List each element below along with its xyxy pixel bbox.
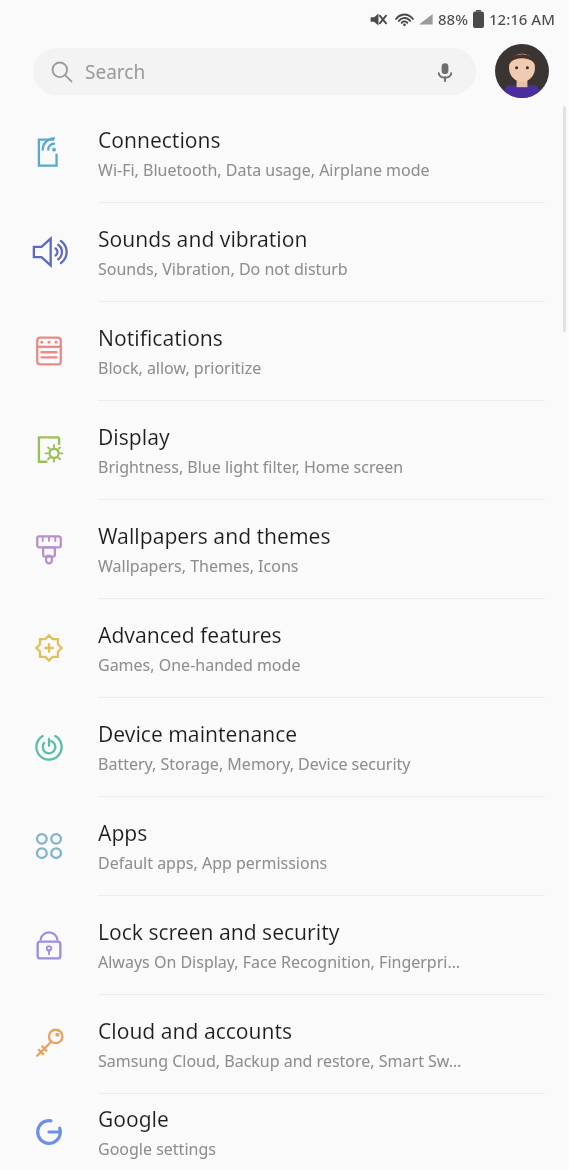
staticText: Sounds and vibration [98, 225, 308, 254]
staticText: Samsung Cloud, Backup and restore, Smart… [98, 1050, 462, 1072]
button[interactable]: Lock screen and security [0, 896, 569, 994]
staticText: Lock screen and security [98, 918, 340, 947]
button[interactable]: Cloud and accounts [0, 995, 569, 1093]
staticText: Google [98, 1105, 169, 1134]
button[interactable]: Sounds and vibration [0, 203, 569, 301]
staticText: Device maintenance [98, 720, 298, 749]
button[interactable]: Search [33, 48, 476, 95]
staticText: Google settings [98, 1138, 216, 1160]
staticText: Search [85, 59, 146, 85]
staticText: 88% [438, 9, 468, 29]
button[interactable]: Display [0, 401, 569, 499]
staticText: Display [98, 423, 170, 452]
staticText: Sounds, Vibration, Do not disturb [98, 258, 348, 280]
staticText: Games, One-handed mode [98, 654, 301, 676]
staticText: Always On Display, Face Recognition, Fin… [98, 951, 461, 973]
staticText: 12:16 AM [489, 9, 555, 29]
button[interactable]: Profile [495, 44, 549, 98]
button[interactable]: Connections [0, 104, 569, 202]
button[interactable]: Google [0, 1094, 569, 1170]
staticText: Apps [98, 819, 148, 848]
button[interactable]: Apps [0, 797, 569, 895]
staticText: Connections [98, 126, 221, 155]
staticText: Default apps, App permissions [98, 852, 328, 874]
staticText: Advanced features [98, 621, 282, 650]
staticText: Wi-Fi, Bluetooth, Data usage, Airplane m… [98, 159, 430, 181]
staticText: Battery, Storage, Memory, Device securit… [98, 753, 411, 775]
staticText: Brightness, Blue light filter, Home scre… [98, 456, 404, 478]
button[interactable]: Advanced features [0, 599, 569, 697]
button[interactable]: Wallpapers and themes [0, 500, 569, 598]
staticText: Wallpapers, Themes, Icons [98, 555, 299, 577]
button[interactable]: Voice search [432, 59, 458, 85]
staticText: Notifications [98, 324, 223, 353]
button[interactable]: Notifications [0, 302, 569, 400]
button[interactable]: Device maintenance [0, 698, 569, 796]
staticText: Cloud and accounts [98, 1017, 293, 1046]
staticText: Block, allow, prioritize [98, 357, 262, 379]
staticText: Wallpapers and themes [98, 522, 331, 551]
